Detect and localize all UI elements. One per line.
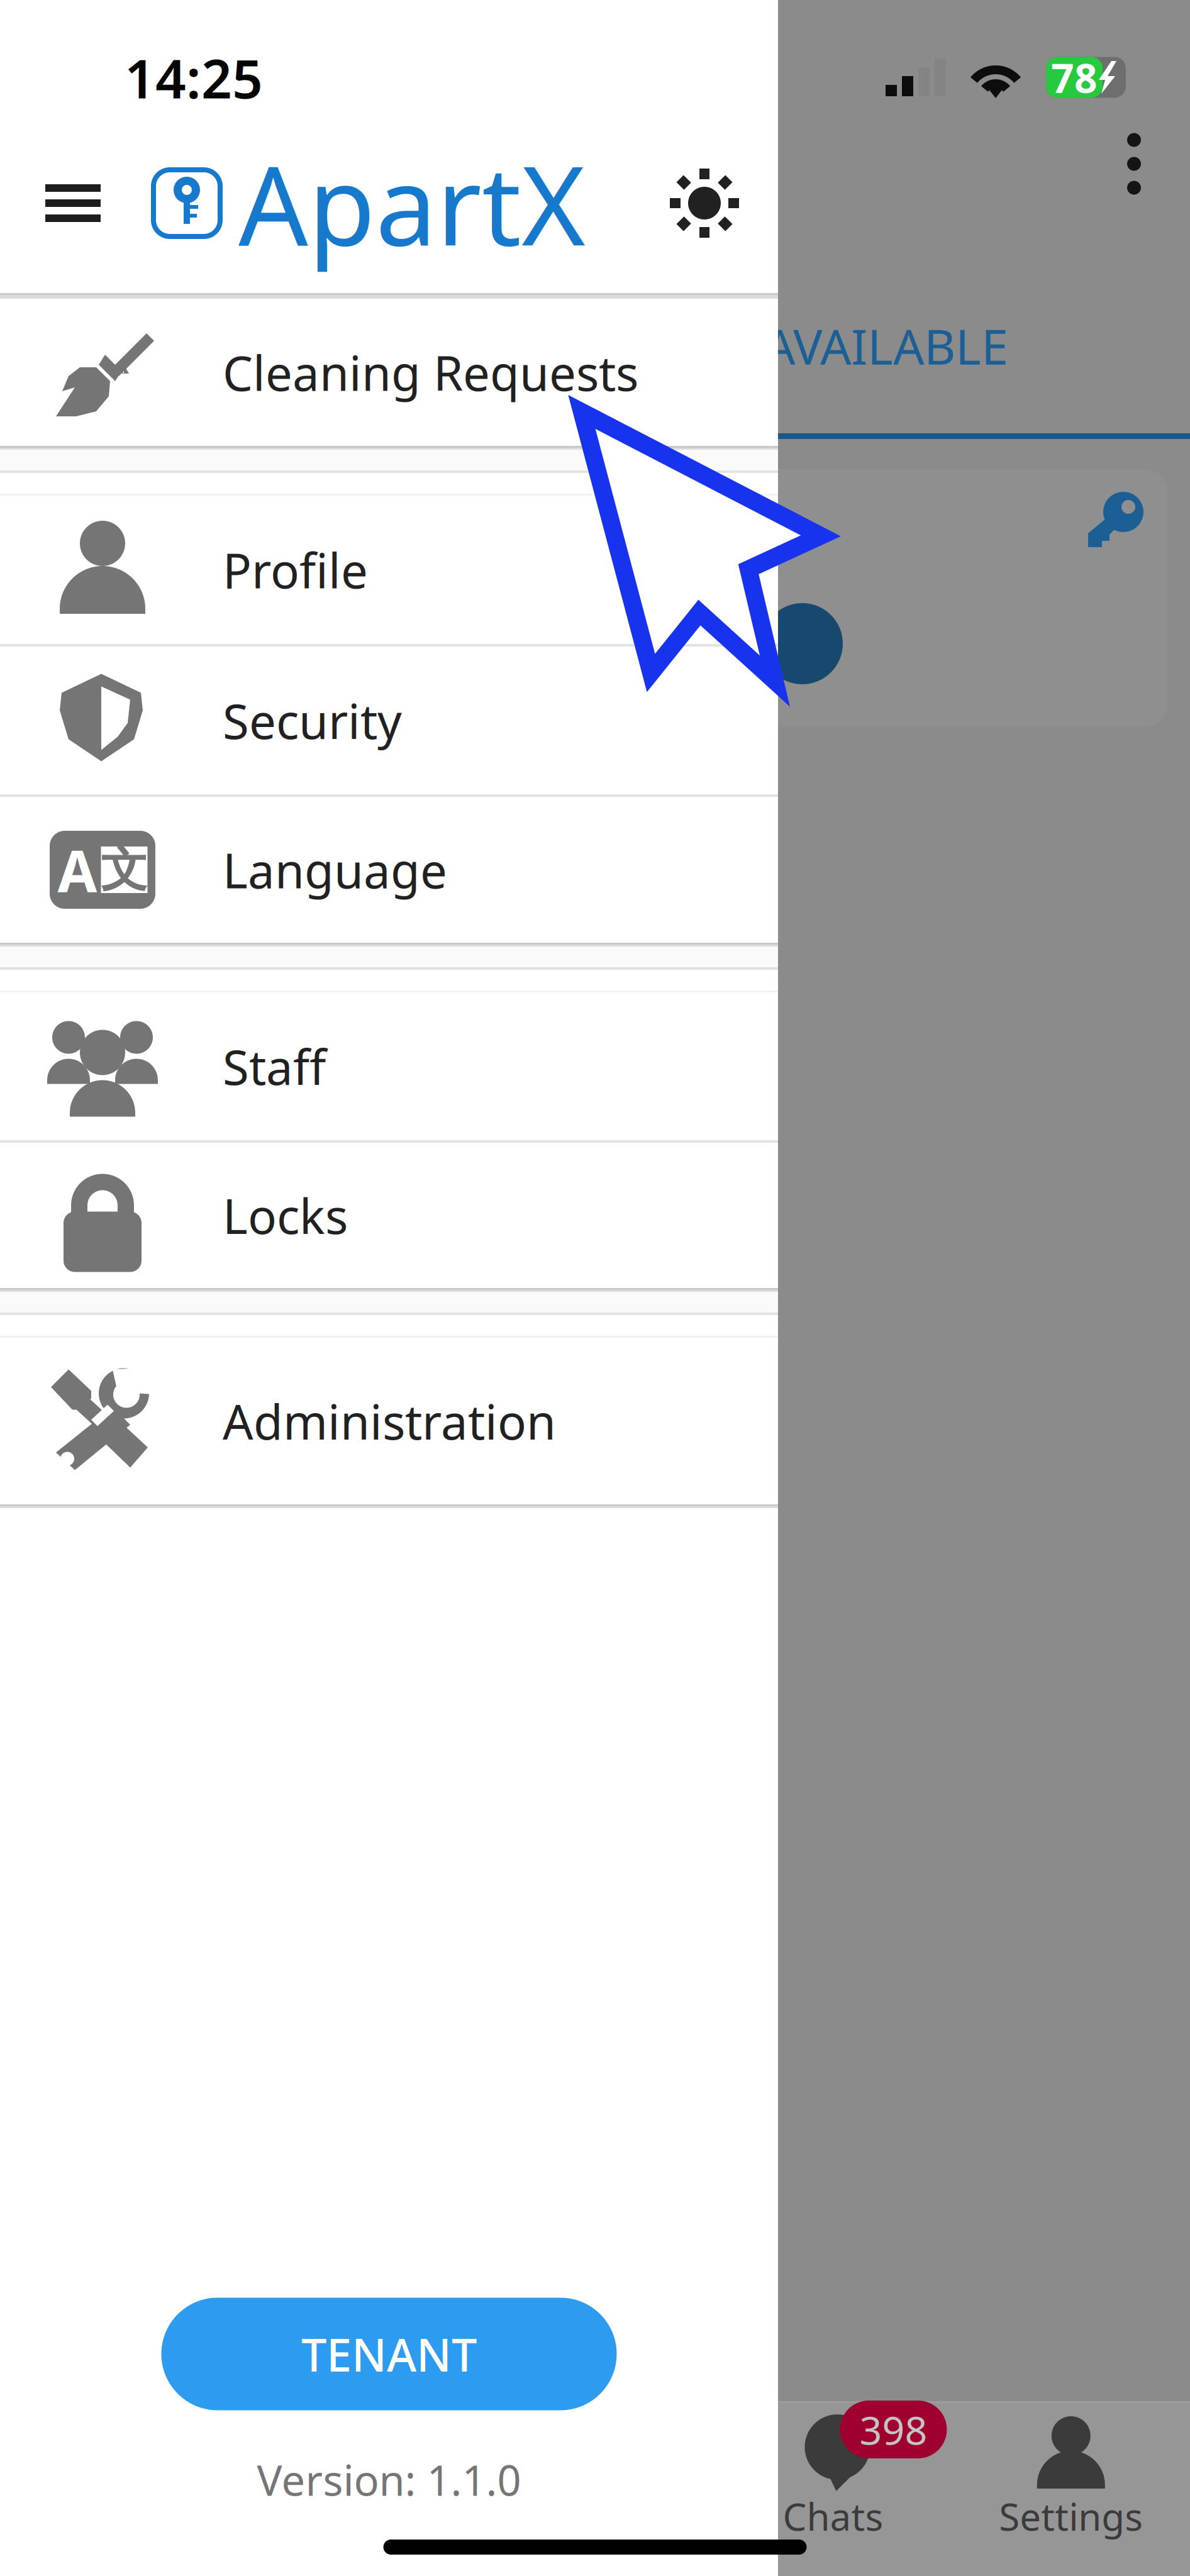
button[interactable]: Toggle theme bbox=[651, 150, 758, 257]
button[interactable]: More options bbox=[1106, 112, 1162, 216]
staticText: Settings bbox=[999, 2491, 1143, 2541]
staticText: 文 bbox=[101, 841, 148, 899]
staticText: Cleaning Requests bbox=[223, 341, 638, 404]
button[interactable]: A bbox=[0, 797, 778, 943]
staticText: Version: 1.1.0 bbox=[257, 2452, 521, 2507]
button[interactable]: Staff bbox=[0, 992, 778, 1140]
staticText: Chats bbox=[783, 2491, 883, 2541]
button[interactable]: Cleaning Requests bbox=[0, 299, 778, 446]
staticText: Language bbox=[223, 838, 447, 901]
staticText: 14:25 bbox=[125, 42, 263, 113]
staticText: Locks bbox=[223, 1184, 348, 1247]
staticText: Profile bbox=[223, 538, 368, 601]
staticText: 398 bbox=[859, 2403, 927, 2456]
button[interactable]: Settings bbox=[952, 2414, 1190, 2565]
button[interactable]: Security bbox=[0, 647, 778, 794]
button[interactable]: Open menu bbox=[24, 163, 122, 243]
staticText: ApartX bbox=[238, 131, 586, 276]
button[interactable]: 398 bbox=[714, 2414, 952, 2565]
button[interactable]: Locks bbox=[0, 1143, 778, 1288]
staticText: 78 bbox=[1051, 51, 1098, 104]
staticText: Staff bbox=[223, 1035, 326, 1098]
staticText: AVAILABLE bbox=[764, 313, 1008, 378]
button[interactable]: TENANT bbox=[161, 2298, 617, 2410]
staticText: Administration bbox=[223, 1389, 556, 1453]
staticText: A bbox=[58, 832, 97, 908]
staticText: TENANT bbox=[301, 2324, 477, 2384]
button[interactable]: Profile bbox=[0, 496, 778, 644]
button[interactable]: Administration bbox=[0, 1338, 778, 1504]
staticText: Security bbox=[223, 689, 402, 752]
